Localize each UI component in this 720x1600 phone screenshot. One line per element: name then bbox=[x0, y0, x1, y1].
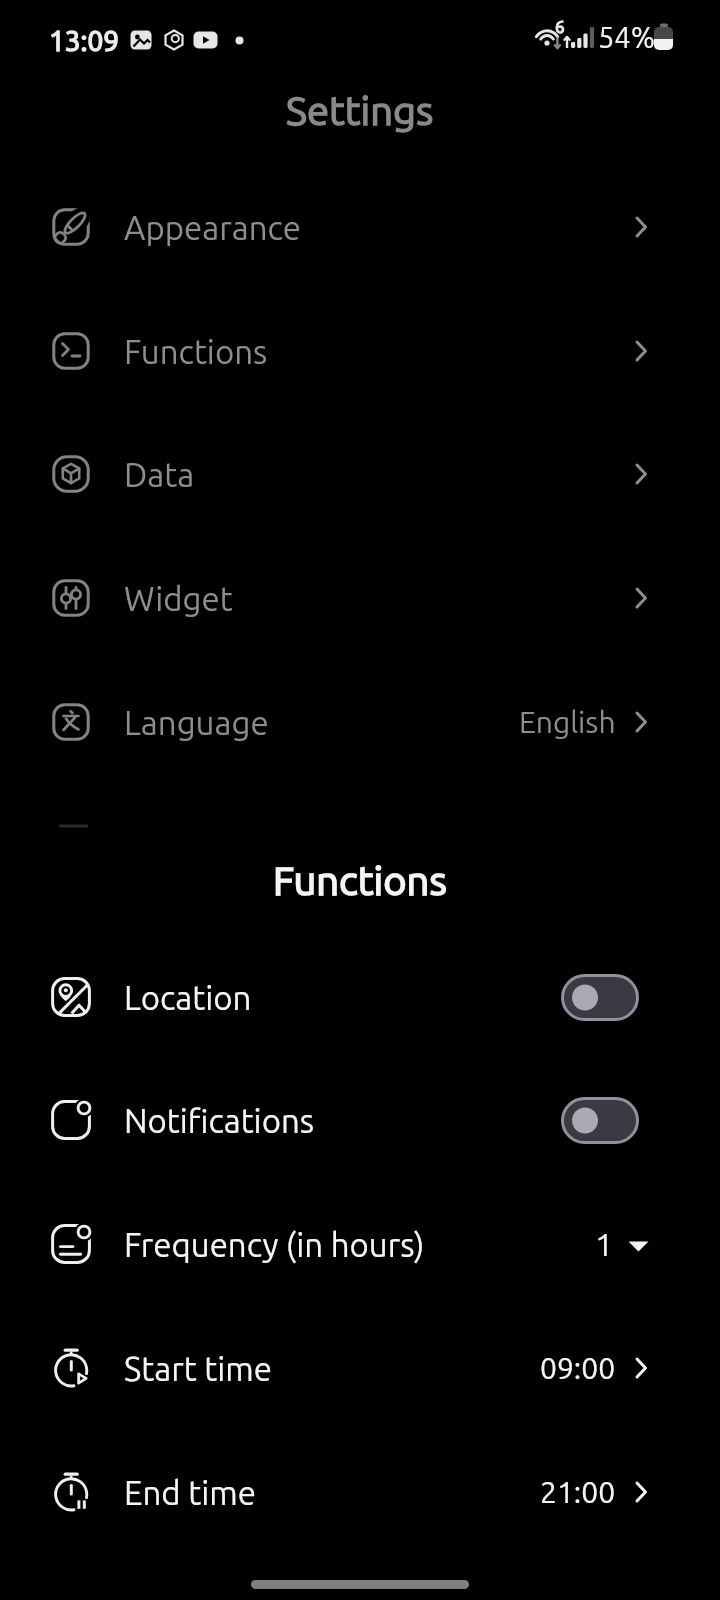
staticText: Start time bbox=[124, 1350, 272, 1387]
staticText: Settings bbox=[286, 88, 434, 133]
staticText: 1 bbox=[595, 1226, 614, 1262]
staticText: 21:00 bbox=[540, 1475, 616, 1509]
staticText: Widget bbox=[124, 580, 233, 617]
button[interactable]: End time bbox=[0, 1442, 720, 1542]
staticText: Frequency (in hours) bbox=[124, 1226, 425, 1263]
staticText: Location bbox=[124, 979, 252, 1016]
staticText: Functions bbox=[273, 858, 447, 903]
staticText: Functions bbox=[273, 858, 447, 903]
staticText: Notifications bbox=[124, 1102, 315, 1139]
staticText: 13:09 bbox=[49, 25, 120, 56]
staticText: Language bbox=[124, 704, 269, 741]
button[interactable]: Data bbox=[0, 424, 720, 524]
staticText: Settings bbox=[286, 88, 434, 133]
button[interactable]: Appearance bbox=[0, 177, 720, 277]
button[interactable]: Frequency (in hours) bbox=[0, 1194, 720, 1294]
staticText: Functions bbox=[124, 333, 268, 370]
staticText: 13:09 bbox=[49, 25, 120, 56]
staticText: Data bbox=[124, 456, 195, 493]
staticText: 6 bbox=[555, 17, 565, 36]
button[interactable]: Location bbox=[0, 947, 720, 1047]
staticText: End time bbox=[124, 1474, 256, 1511]
button[interactable]: Language bbox=[0, 672, 720, 772]
staticText: 6 bbox=[555, 17, 565, 36]
button[interactable]: Widget bbox=[0, 548, 720, 648]
button[interactable]: Start time bbox=[0, 1318, 720, 1418]
staticText: English bbox=[519, 705, 616, 739]
staticText: 54% bbox=[598, 21, 656, 54]
button[interactable]: Notifications bbox=[0, 1070, 720, 1170]
staticText: 09:00 bbox=[540, 1351, 616, 1385]
staticText: Appearance bbox=[124, 209, 301, 246]
button[interactable]: Functions bbox=[0, 301, 720, 401]
